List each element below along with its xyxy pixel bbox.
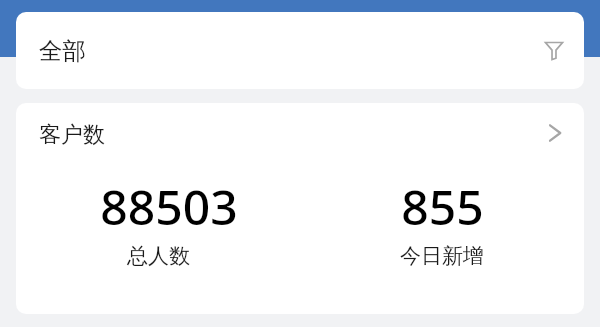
staticText: 全部 — [39, 36, 86, 66]
button[interactable]: 全部 — [16, 12, 584, 89]
button[interactable]: 855 — [300, 174, 584, 269]
staticText: 855 — [401, 174, 484, 239]
staticText: 88503 — [100, 174, 238, 239]
staticText: 总人数 — [127, 243, 190, 269]
button[interactable]: 客户数 — [16, 103, 584, 167]
button[interactable]: Filter — [540, 37, 568, 65]
button[interactable]: Open customer count details — [540, 121, 568, 149]
staticText: 今日新增 — [400, 243, 484, 269]
button[interactable]: 88503 — [16, 174, 300, 269]
staticText: 客户数 — [39, 121, 105, 149]
